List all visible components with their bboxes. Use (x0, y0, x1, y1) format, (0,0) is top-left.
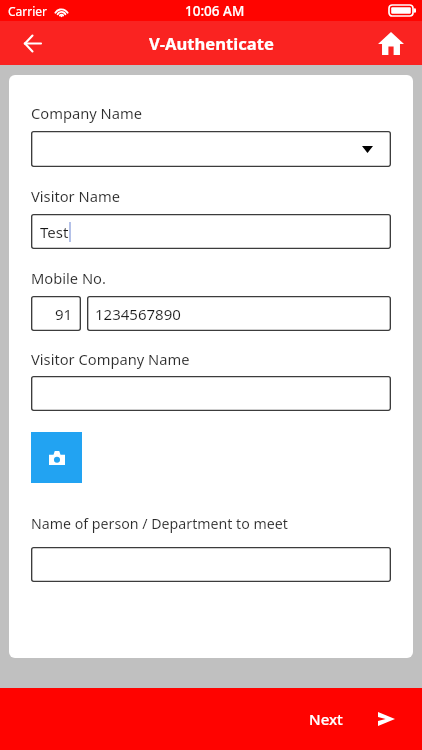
button[interactable] (31, 131, 391, 167)
staticText: Test (40, 222, 69, 242)
staticText: Next (309, 709, 343, 729)
button[interactable]: 1234567890 (87, 296, 391, 331)
button[interactable]: Back (14, 25, 50, 61)
staticText: Visitor Name (31, 186, 120, 206)
button[interactable]: Take photo (31, 432, 82, 483)
staticText: Company Name (31, 103, 142, 123)
button[interactable]: 91 (31, 296, 81, 331)
staticText: Name of person / Department to meet (31, 514, 288, 533)
staticText: 91 (55, 304, 73, 324)
staticText: Mobile No. (31, 268, 106, 288)
button[interactable]: Home (373, 25, 409, 61)
staticText: V-Authenticate (149, 32, 274, 55)
button[interactable]: Next (309, 709, 395, 729)
staticText: 10:06 AM (185, 2, 245, 20)
staticText: Visitor Company Name (31, 349, 190, 369)
button[interactable]: Test (31, 214, 391, 249)
staticText: Carrier (8, 3, 48, 19)
button[interactable] (31, 547, 391, 582)
staticText: 1234567890 (95, 304, 181, 324)
button[interactable] (31, 376, 391, 411)
